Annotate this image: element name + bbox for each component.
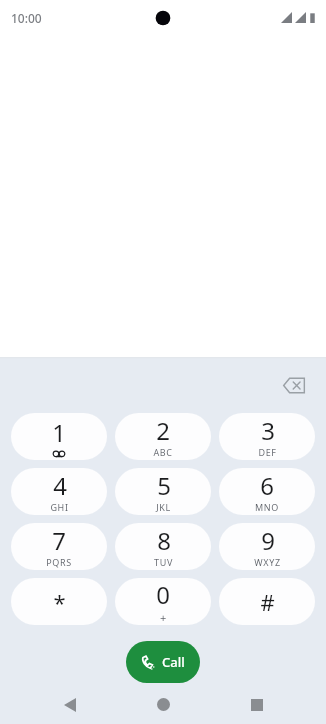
staticText: DEF [258,446,277,458]
staticText: Call [162,653,185,671]
staticText: JKL [156,501,171,513]
button[interactable]: Backspace [274,365,314,405]
button[interactable]: 6 [219,468,315,515]
button[interactable]: 4 [11,468,107,515]
button[interactable]: Recents [233,685,281,724]
staticText: * [53,587,66,617]
button[interactable]: 2 [115,413,211,460]
button[interactable]: * [11,578,107,625]
staticText: + [160,610,167,624]
button[interactable]: 5 [115,468,211,515]
staticText: 4 [53,469,67,502]
button[interactable]: Back [46,685,94,724]
staticText: 3 [261,414,275,447]
staticText: GHI [50,501,69,513]
button[interactable]: 9 [219,523,315,570]
staticText: 6 [260,469,274,502]
button[interactable]: 3 [219,413,315,460]
staticText: MNO [255,501,279,513]
staticText: 5 [157,469,171,502]
staticText: 10:00 [11,10,42,26]
button[interactable]: Call [126,641,200,683]
button[interactable]: Home [139,685,187,724]
button[interactable]: 7 [11,523,107,570]
staticText: 7 [52,524,66,557]
button[interactable]: # [219,578,315,625]
button[interactable]: 8 [115,523,211,570]
button[interactable]: 0 [115,578,211,625]
staticText: PQRS [46,556,72,568]
staticText: # [260,587,275,617]
button[interactable]: 1 [11,413,107,460]
staticText: ABC [153,446,173,458]
staticText: 9 [261,524,275,557]
staticText: 8 [157,524,171,557]
staticText: TUV [154,556,173,568]
staticText: 0 [156,578,170,611]
staticText: 2 [156,414,170,447]
staticText: WXYZ [254,556,281,568]
staticText: 1 [52,416,66,449]
